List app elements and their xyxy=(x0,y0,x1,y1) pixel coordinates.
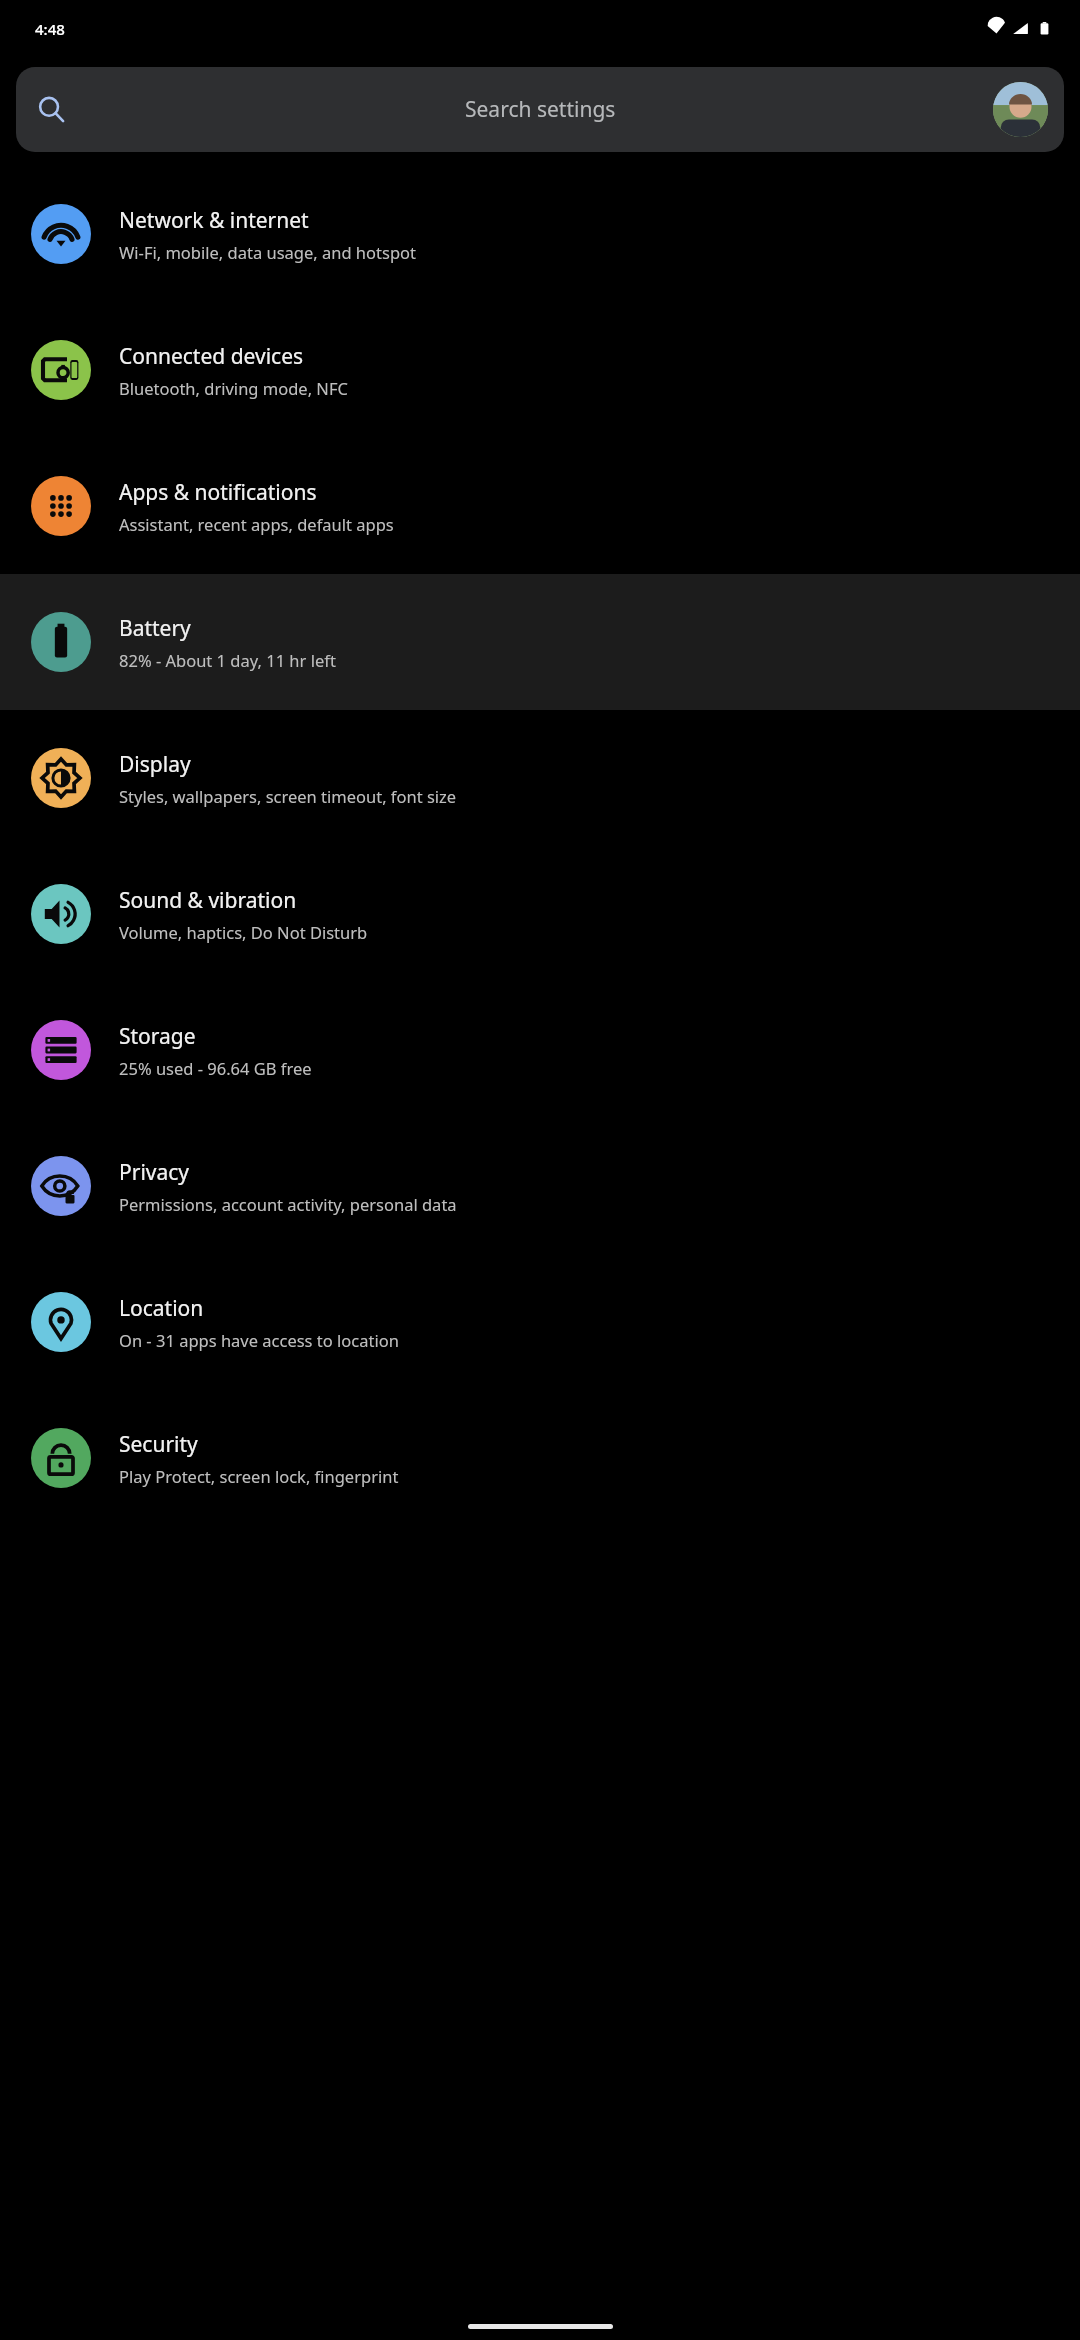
staticText: Privacy xyxy=(119,1158,190,1187)
button[interactable]: Connected devices xyxy=(0,302,1080,438)
staticText: Display xyxy=(119,750,191,779)
staticText: 82% - About 1 day, 11 hr left xyxy=(119,649,336,671)
staticText: Location xyxy=(119,1294,204,1323)
staticText: Volume, haptics, Do Not Disturb xyxy=(119,921,368,943)
button[interactable]: Search xyxy=(16,67,1064,152)
staticText: Search settings xyxy=(465,95,616,124)
staticText: Styles, wallpapers, screen timeout, font… xyxy=(119,785,457,807)
button[interactable]: Security xyxy=(0,1390,1080,1526)
button[interactable]: Display xyxy=(0,710,1080,846)
other: Search xyxy=(38,96,65,123)
button[interactable]: Storage xyxy=(0,982,1080,1118)
staticText: Wi-Fi, mobile, data usage, and hotspot xyxy=(119,241,416,263)
staticText: Battery xyxy=(119,614,191,643)
button[interactable]: Apps & notifications xyxy=(0,438,1080,574)
staticText: Network & internet xyxy=(119,206,309,235)
button[interactable]: Network & internet xyxy=(0,166,1080,302)
staticText: Security xyxy=(119,1430,198,1459)
staticText: Sound & vibration xyxy=(119,886,297,915)
staticText: 25% used - 96.64 GB free xyxy=(119,1057,312,1079)
button[interactable]: Location xyxy=(0,1254,1080,1390)
button[interactable]: Battery xyxy=(0,574,1080,710)
staticText: 4:48 xyxy=(35,19,65,39)
staticText: Bluetooth, driving mode, NFC xyxy=(119,377,348,399)
staticText: Storage xyxy=(119,1022,196,1051)
staticText: Play Protect, screen lock, fingerprint xyxy=(119,1465,399,1487)
staticText: Permissions, account activity, personal … xyxy=(119,1193,457,1215)
other: Account xyxy=(993,82,1048,137)
button[interactable]: Sound & vibration xyxy=(0,846,1080,982)
staticText: Apps & notifications xyxy=(119,478,317,507)
staticText: Connected devices xyxy=(119,342,304,371)
staticText: On - 31 apps have access to location xyxy=(119,1329,399,1351)
staticText: Assistant, recent apps, default apps xyxy=(119,513,394,535)
button[interactable]: Privacy xyxy=(0,1118,1080,1254)
